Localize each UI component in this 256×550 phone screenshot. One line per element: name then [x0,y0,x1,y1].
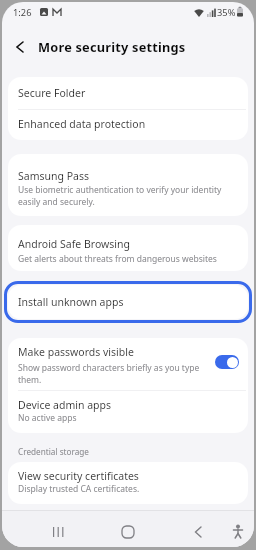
staticText: Make passwords visible [18,345,134,359]
staticText: Credential storage [18,446,89,457]
button[interactable] [8,338,248,390]
button[interactable] [193,525,203,539]
staticText: Enhanced data protection [18,117,146,131]
button[interactable] [8,390,248,433]
staticText: View security certificates [18,469,139,483]
staticText: 35% [217,6,236,19]
button[interactable] [8,225,248,271]
button[interactable] [8,462,248,504]
staticText: Show password characters briefly as you … [18,362,200,386]
staticText: No active apps [18,412,77,424]
button[interactable] [231,524,245,540]
button[interactable] [8,154,248,216]
staticText: Display trusted CA certificates. [18,483,140,495]
button[interactable] [8,285,248,319]
button[interactable] [15,41,25,53]
staticText: Device admin apps [18,398,112,412]
button[interactable] [8,77,248,109]
button[interactable] [52,525,66,539]
staticText: Secure Folder [18,86,86,100]
staticText: Use biometric authentication to verify y… [18,184,222,208]
button[interactable] [121,525,135,539]
staticText: Install unknown apps [18,295,124,309]
staticText: Get alerts about threats from dangerous … [18,253,217,265]
staticText: Android Safe Browsing [18,237,130,251]
button[interactable] [215,355,239,369]
button[interactable] [8,109,248,141]
staticText: Samsung Pass [18,169,89,183]
staticText: More security settings [38,38,186,55]
staticText: 1:26 [13,6,32,19]
